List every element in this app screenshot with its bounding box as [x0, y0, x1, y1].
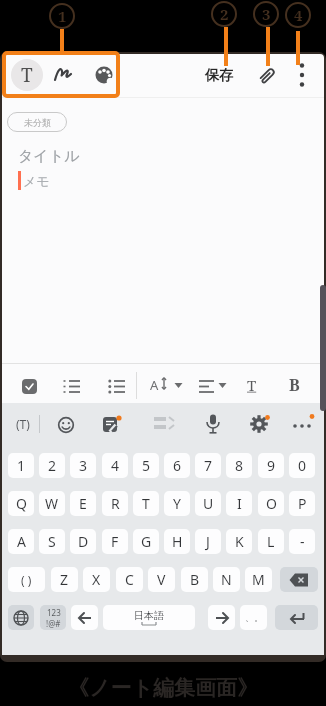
staticText: S — [48, 532, 56, 551]
button[interactable]: U — [195, 491, 221, 516]
button[interactable]: B — [181, 567, 208, 592]
button[interactable]: E — [70, 491, 96, 516]
staticText: F — [111, 532, 119, 551]
button[interactable] — [196, 371, 234, 399]
button[interactable]: 2 — [39, 453, 65, 478]
button[interactable] — [292, 414, 316, 434]
button[interactable]: Y — [164, 491, 190, 516]
staticText: 1 — [17, 456, 26, 475]
button[interactable]: G — [133, 529, 159, 554]
button[interactable]: T — [11, 59, 43, 91]
button[interactable]: 8 — [226, 453, 252, 478]
staticText: G — [141, 532, 152, 551]
button[interactable]: B — [282, 372, 306, 398]
button[interactable]: 0 — [289, 453, 315, 478]
button[interactable]: S — [39, 529, 65, 554]
button[interactable]: 123 — [40, 605, 66, 630]
button[interactable]: J — [195, 529, 221, 554]
button[interactable]: L — [258, 529, 284, 554]
button[interactable]: F — [102, 529, 128, 554]
button[interactable] — [280, 567, 318, 592]
button[interactable]: 1 — [8, 453, 34, 478]
staticText: 5 — [142, 456, 151, 475]
staticText: 4 — [294, 5, 303, 25]
staticText: 《ノート編集画面》 — [0, 675, 326, 701]
staticText: 、。 — [245, 612, 263, 623]
button[interactable]: Q — [8, 491, 34, 516]
button[interactable]: A — [8, 529, 34, 554]
button[interactable] — [108, 378, 126, 396]
button[interactable]: R — [102, 491, 128, 516]
staticText: !@# — [46, 618, 61, 629]
button[interactable]: X — [83, 567, 110, 592]
button[interactable] — [205, 414, 221, 435]
staticText: N — [221, 570, 232, 589]
button[interactable] — [295, 61, 309, 89]
staticText: 保存 — [205, 67, 233, 85]
button[interactable]: H — [164, 529, 190, 554]
button[interactable]: 3 — [70, 453, 96, 478]
staticText: 0 — [298, 456, 307, 475]
staticText: D — [78, 532, 89, 551]
button[interactable]: - — [289, 529, 315, 554]
button[interactable]: T — [133, 491, 159, 516]
staticText: I — [237, 494, 242, 513]
button[interactable] — [63, 378, 81, 396]
button[interactable]: 日本語 — [103, 605, 195, 630]
staticText: T — [247, 375, 257, 395]
button[interactable]: 未分類 — [7, 112, 67, 132]
staticText: タイトル — [18, 147, 80, 166]
staticText: L — [267, 532, 275, 551]
button[interactable] — [102, 415, 122, 435]
staticText: 3 — [79, 456, 88, 475]
button[interactable]: I — [226, 491, 252, 516]
staticText: - — [300, 532, 305, 551]
button[interactable]: Z — [51, 567, 78, 592]
button[interactable] — [8, 605, 34, 630]
button[interactable] — [256, 65, 278, 87]
button[interactable]: W — [39, 491, 65, 516]
button[interactable]: 4 — [102, 453, 128, 478]
button[interactable]: N — [213, 567, 240, 592]
staticText: 7 — [204, 456, 213, 475]
staticText: U — [203, 494, 214, 513]
button[interactable]: (T) — [8, 410, 38, 438]
staticText: V — [157, 570, 166, 589]
button[interactable] — [58, 417, 74, 433]
button[interactable]: 9 — [258, 453, 284, 478]
button[interactable] — [94, 65, 114, 85]
staticText: B — [289, 374, 300, 396]
button[interactable]: ( ) — [8, 567, 45, 592]
button[interactable]: 7 — [195, 453, 221, 478]
button[interactable] — [71, 605, 98, 630]
staticText: 123 — [47, 607, 61, 618]
button[interactable]: T — [240, 372, 264, 398]
staticText: E — [79, 494, 87, 513]
staticText: C — [125, 570, 134, 589]
button[interactable]: 5 — [133, 453, 159, 478]
button[interactable] — [54, 65, 74, 85]
button[interactable]: M — [245, 567, 272, 592]
button[interactable]: P — [289, 491, 315, 516]
button[interactable]: K — [226, 529, 252, 554]
button[interactable] — [152, 416, 176, 432]
staticText: 8 — [235, 456, 244, 475]
button[interactable] — [249, 414, 271, 436]
staticText: ( ) — [21, 572, 32, 588]
button[interactable] — [275, 605, 318, 630]
button[interactable] — [146, 371, 190, 399]
button[interactable]: V — [148, 567, 175, 592]
button[interactable]: 、。 — [240, 605, 267, 630]
staticText: O — [266, 494, 277, 513]
staticText: A — [150, 376, 159, 394]
staticText: 9 — [267, 456, 276, 475]
button[interactable]: 6 — [164, 453, 190, 478]
button[interactable] — [208, 605, 235, 630]
button[interactable]: 保存 — [198, 66, 240, 86]
staticText: Z — [60, 570, 69, 589]
button[interactable] — [22, 379, 37, 394]
button[interactable]: D — [70, 529, 96, 554]
button[interactable]: O — [258, 491, 284, 516]
staticText: 2 — [48, 456, 57, 475]
button[interactable]: C — [116, 567, 143, 592]
